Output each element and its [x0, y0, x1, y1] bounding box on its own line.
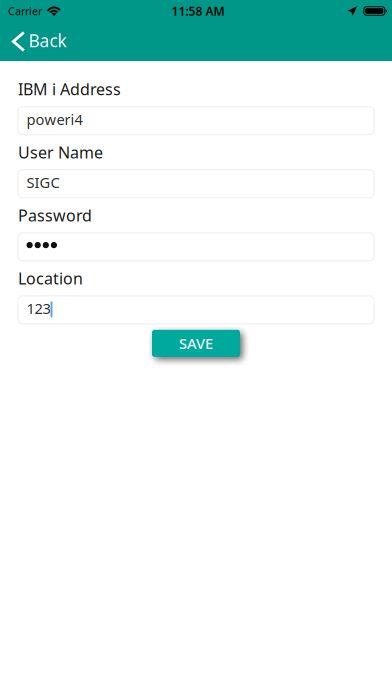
- staticText: Location: [18, 268, 83, 289]
- staticText: IBM i Address: [18, 78, 121, 100]
- staticText: SAVE: [179, 334, 213, 353]
- button[interactable]: User Name: [18, 170, 374, 198]
- staticText: 11:58 AM: [171, 3, 224, 19]
- button[interactable]: Back: [0, 22, 79, 61]
- staticText: poweri4: [26, 109, 82, 129]
- staticText: Back: [29, 29, 67, 52]
- button[interactable]: IBM i Address: [18, 107, 374, 135]
- staticText: Password: [18, 205, 92, 226]
- button[interactable]: Password: [18, 233, 374, 261]
- staticText: SIGC: [26, 173, 59, 192]
- button[interactable]: SAVE: [152, 330, 240, 357]
- button[interactable]: Location: [18, 296, 374, 324]
- staticText: User Name: [18, 141, 103, 163]
- staticText: 123: [26, 299, 50, 318]
- staticText: Carrier: [8, 4, 42, 18]
